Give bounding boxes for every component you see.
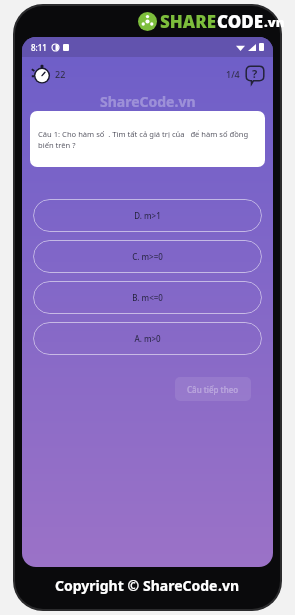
button[interactable]: Timer: [30, 62, 68, 86]
staticText: 22: [55, 68, 66, 80]
staticText: B. m<=0: [132, 292, 163, 303]
staticText: 8:11: [31, 42, 47, 53]
button[interactable]: B. m<=0: [33, 281, 262, 314]
button[interactable]: D. m>1: [33, 199, 262, 232]
button[interactable]: A. m>0: [33, 322, 262, 355]
staticText: Câu 1: Cho hàm số . Tìm tất cả giá trị c…: [38, 129, 257, 150]
button[interactable]: Help: [245, 64, 265, 84]
staticText: Câu tiếp theo: [187, 384, 239, 395]
staticText: A. m>0: [134, 333, 161, 344]
staticText: CODE: [217, 10, 264, 33]
button[interactable]: Câu tiếp theo: [175, 377, 251, 401]
button[interactable]: Câu 1: Cho hàm số . Tìm tất cả giá trị c…: [30, 111, 265, 167]
staticText: D. m>1: [134, 210, 161, 221]
staticText: C. m>=0: [132, 251, 163, 262]
staticText: ShareCode.vn: [100, 92, 196, 111]
staticText: ShareCode: [143, 576, 218, 595]
staticText: SHARE: [160, 10, 217, 33]
staticText: .vn: [218, 576, 240, 595]
staticText: ?: [252, 66, 258, 81]
button[interactable]: C. m>=0: [33, 240, 262, 273]
staticText: 1/4: [226, 68, 240, 80]
staticText: Copyright ©: [55, 576, 143, 595]
staticText: .vn: [264, 13, 285, 31]
